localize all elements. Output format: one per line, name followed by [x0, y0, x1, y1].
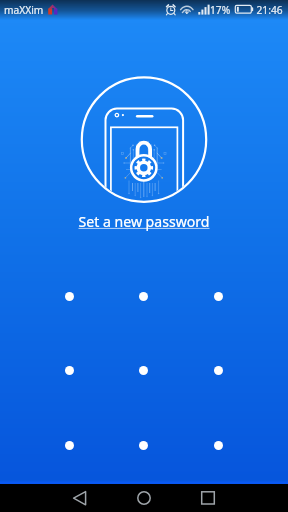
- button[interactable]: Pattern dot 7: [47, 423, 91, 467]
- button[interactable]: Pattern dot 8: [121, 423, 165, 467]
- button[interactable]: Pattern dot 9: [196, 423, 240, 467]
- button[interactable]: Back: [56, 484, 104, 512]
- button[interactable]: Set a new password: [62, 208, 226, 234]
- staticText: Set a new password: [78, 212, 210, 231]
- button[interactable]: Pattern dot 4: [47, 348, 91, 392]
- other: Pattern lock grid: [45, 272, 241, 468]
- button[interactable]: Recent apps: [184, 484, 232, 512]
- button[interactable]: Pattern dot 1: [47, 274, 91, 318]
- button[interactable]: Pattern dot 5: [121, 348, 165, 392]
- button[interactable]: Pattern dot 2: [121, 274, 165, 318]
- button[interactable]: Pattern dot 6: [196, 348, 240, 392]
- button[interactable]: Home: [120, 484, 168, 512]
- button[interactable]: Pattern dot 3: [196, 274, 240, 318]
